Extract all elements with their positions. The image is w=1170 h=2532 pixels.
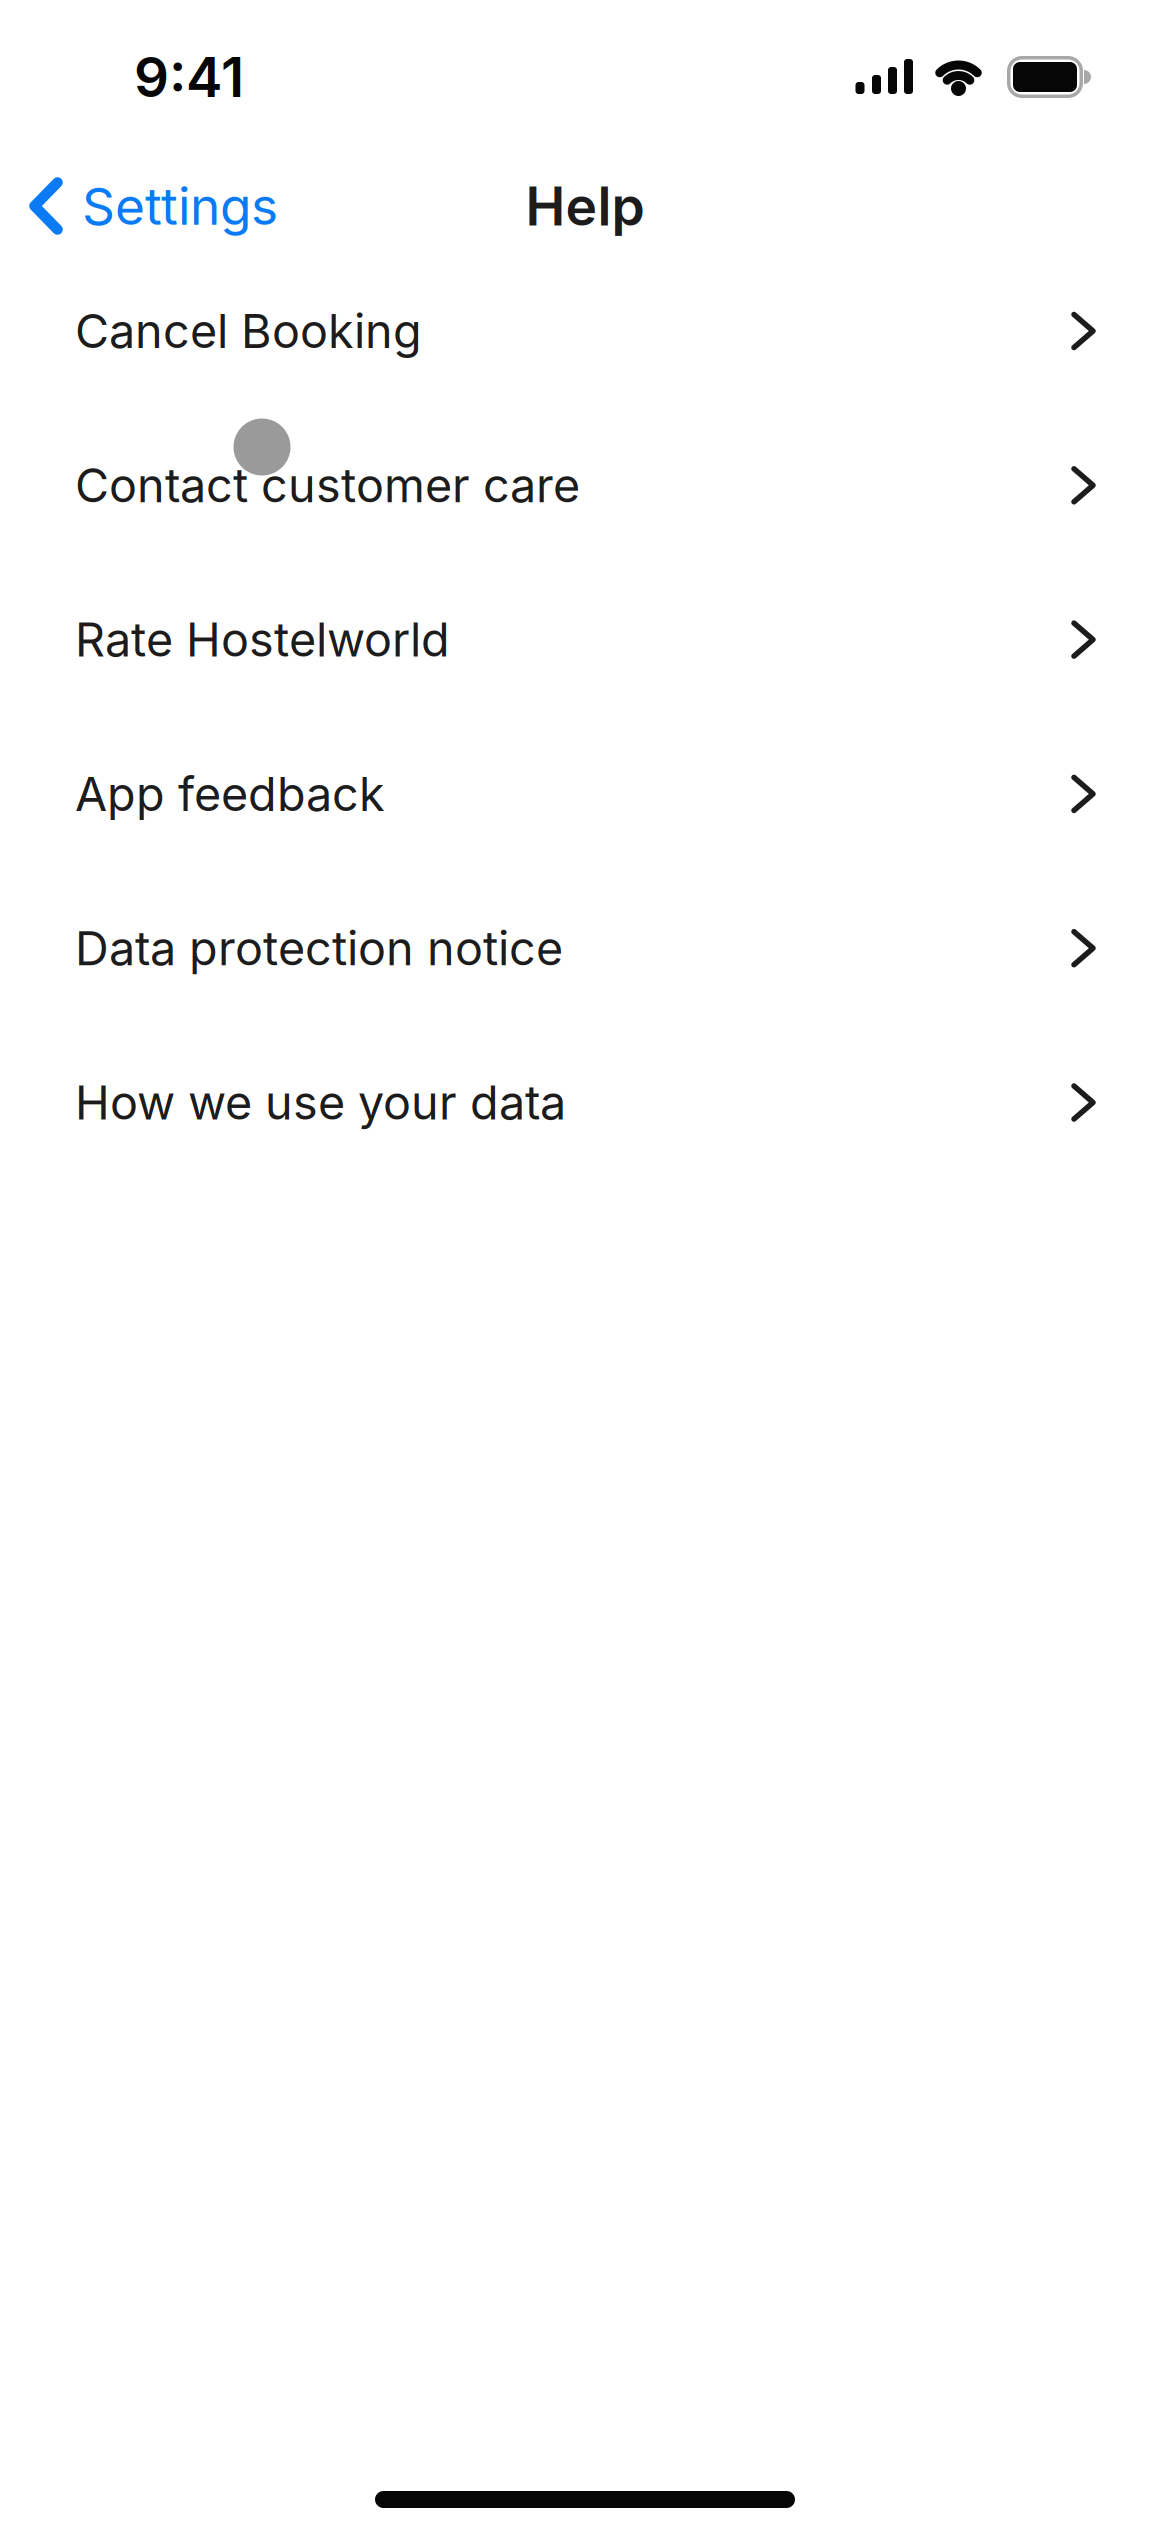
staticText: 9:41 [134,44,244,110]
button[interactable]: Rate Hostelworld [0,563,1170,717]
staticText: Settings [82,175,278,237]
staticText: Data protection notice [75,920,563,976]
staticText: Rate Hostelworld [75,611,450,668]
staticText: Cancel Booking [75,303,422,359]
button[interactable]: Back to Settings [29,161,429,251]
staticText: How we use your data [75,1074,566,1131]
button[interactable]: Cancel Booking [0,254,1170,408]
button[interactable]: App feedback [0,717,1170,871]
staticText: Contact customer care [75,457,580,514]
staticText: Help [525,174,644,238]
button[interactable]: How we use your data [0,1025,1170,1179]
button[interactable]: Data protection notice [0,871,1170,1025]
staticText: App feedback [75,766,385,822]
button[interactable]: Contact customer care [0,408,1170,562]
